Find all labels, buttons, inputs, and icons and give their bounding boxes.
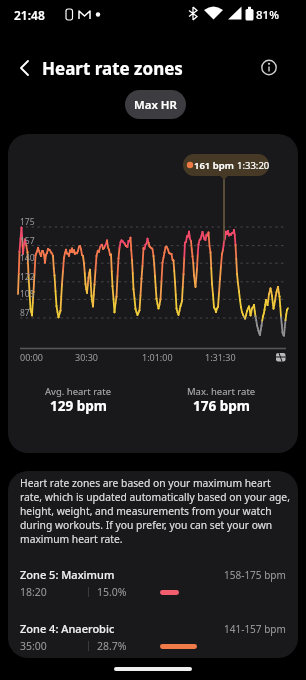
staticText: 140 <box>20 252 35 264</box>
staticText: 15.0% <box>97 585 127 599</box>
staticText: 30:30 <box>75 351 99 362</box>
staticText: Avg. heart rate <box>45 385 111 398</box>
button[interactable]: Max HR <box>125 90 186 119</box>
staticText: 105 <box>20 288 35 300</box>
staticText: 175 <box>20 216 35 228</box>
staticText: Heart rate zones are based on your maxim… <box>20 476 292 546</box>
staticText: 161 bpm <box>194 159 234 172</box>
button[interactable] <box>10 54 38 82</box>
staticText: 1:31:30 <box>205 351 236 362</box>
staticText: 158-175 bpm <box>224 568 286 582</box>
staticText: 122 <box>20 271 35 283</box>
staticText: Zone 4: Anaerobic <box>20 621 115 636</box>
staticText: 18:20 <box>20 585 47 599</box>
staticText: 21:48 <box>14 7 45 23</box>
staticText: 129 bpm <box>50 397 107 414</box>
staticText: 28.7% <box>97 639 127 653</box>
staticText: 157 <box>20 235 35 247</box>
staticText: 81% <box>256 7 279 23</box>
staticText: 35:00 <box>20 639 47 653</box>
button[interactable] <box>255 53 283 81</box>
staticText: Max. heart rate <box>187 385 256 398</box>
staticText: 87 <box>20 307 30 319</box>
staticText: 176 bpm <box>193 397 250 414</box>
staticText: 141-157 bpm <box>224 622 286 636</box>
button[interactable]: Zone 5: Maximum <box>8 567 298 617</box>
staticText: 1:01:00 <box>142 351 173 362</box>
staticText: Heart rate zones <box>42 57 183 80</box>
staticText: 00:00 <box>20 351 44 363</box>
button[interactable]: Zone 4: Anaerobic <box>8 621 298 658</box>
staticText: 1:33:20 <box>237 159 270 172</box>
staticText: Max HR <box>134 97 177 113</box>
staticText: Zone 5: Maximum <box>20 567 115 582</box>
